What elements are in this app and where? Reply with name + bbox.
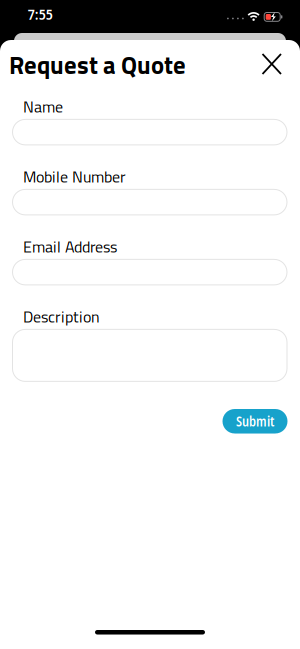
staticText: Submit	[236, 412, 274, 430]
button[interactable]: Submit	[222, 409, 287, 433]
staticText: Name	[23, 94, 63, 119]
button[interactable]	[257, 49, 286, 79]
staticText: Request a Quote	[9, 46, 186, 83]
button[interactable]	[12, 119, 287, 145]
staticText: 7:55	[28, 4, 53, 24]
button[interactable]	[12, 189, 287, 215]
button[interactable]	[12, 259, 287, 285]
button[interactable]	[12, 329, 287, 381]
staticText: Email Address	[23, 234, 117, 259]
staticText: Description	[23, 304, 100, 329]
staticText: Mobile Number	[23, 164, 126, 189]
